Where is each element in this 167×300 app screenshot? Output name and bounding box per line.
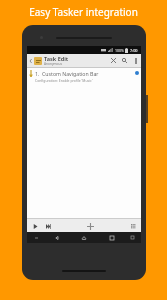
staticText: Task Edit bbox=[44, 55, 69, 62]
staticText: 1. Custom Navigation Bar bbox=[35, 70, 99, 77]
button[interactable]: Close bbox=[108, 55, 119, 66]
button[interactable]: Add action bbox=[84, 220, 96, 232]
button[interactable]: More options bbox=[130, 55, 141, 66]
button[interactable]: Back bbox=[45, 232, 68, 243]
button[interactable]: Step bbox=[43, 221, 53, 231]
button[interactable]: Grid view bbox=[128, 221, 138, 231]
button[interactable]: 1. Custom Navigation Bar bbox=[27, 68, 141, 85]
button[interactable]: Play bbox=[30, 221, 40, 231]
staticText: 7:00 bbox=[130, 48, 138, 53]
button[interactable]: Search bbox=[119, 55, 130, 66]
button[interactable]: Back bbox=[27, 57, 34, 64]
staticText: 100% bbox=[115, 48, 124, 53]
button[interactable]: Recents bbox=[100, 232, 123, 243]
button[interactable]: Screenshot bbox=[123, 232, 141, 243]
staticText: Easy Tasker integration bbox=[29, 5, 138, 19]
staticText: Anonymous bbox=[44, 62, 62, 66]
staticText: Configuration: Enable profile 'Music' bbox=[35, 78, 93, 83]
button[interactable]: Menu bbox=[27, 232, 45, 243]
button[interactable]: Home bbox=[68, 232, 100, 243]
